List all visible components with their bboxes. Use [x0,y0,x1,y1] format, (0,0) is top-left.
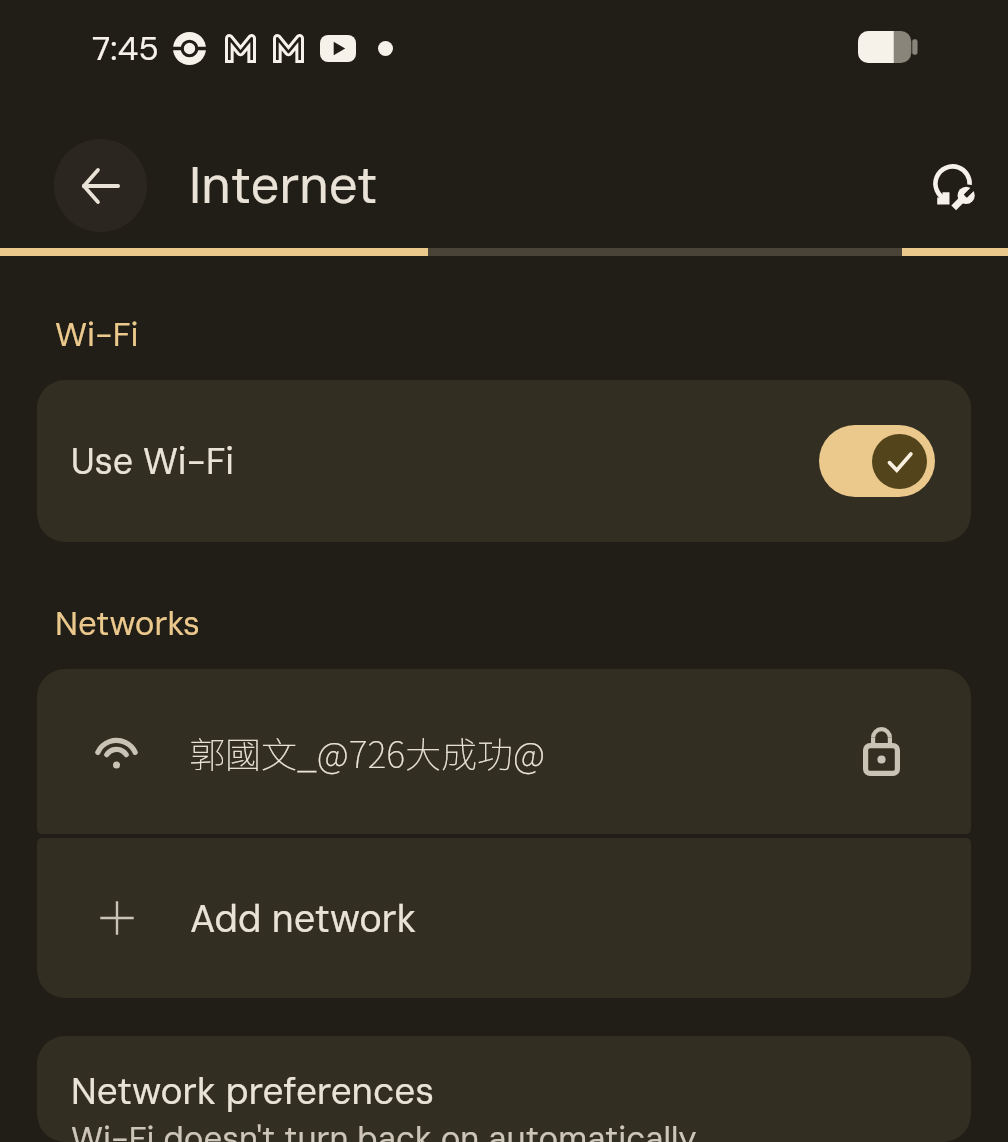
button[interactable]: Network preferences [37,1036,971,1142]
button[interactable]: Use Wi-Fi [37,380,971,542]
staticText: Wi-Fi [55,313,139,356]
staticText: 郭國文_@726大成功@ [189,726,863,778]
staticText: Network preferences [71,1067,435,1115]
button[interactable]: 郭國文_@726大成功@ [37,669,971,834]
button[interactable]: Back [54,139,147,232]
staticText: Use Wi-Fi [71,438,234,485]
button[interactable]: Use Wi-Fi toggle [819,425,935,497]
button[interactable]: Add network [37,838,971,998]
staticText: Wi-Fi doesn't turn back on automatically [71,1117,697,1142]
staticText: Networks [55,602,200,645]
staticText: Internet [189,152,378,218]
staticText: 7:45 [92,26,159,70]
staticText: Add network [190,894,416,943]
button[interactable]: Fix connectivity [910,127,1002,219]
